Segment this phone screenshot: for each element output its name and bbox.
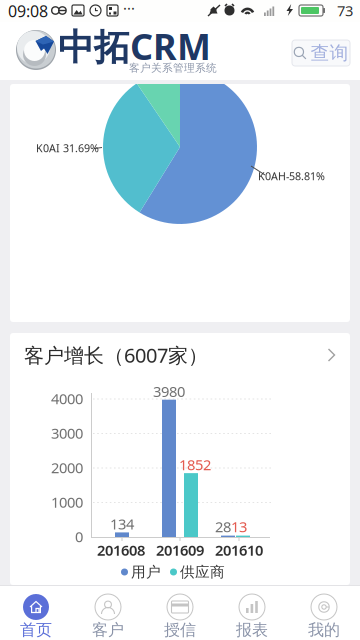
staticText: 客户关系管理系统 [129,61,217,74]
staticText: 13 [231,517,247,536]
staticText: 首页 [20,620,52,640]
staticText: 查询 [310,41,348,64]
staticText: 28 [215,517,231,536]
button[interactable]: 首页 [0,586,72,640]
staticText: 201610 [215,540,263,560]
staticText: 我的 [308,620,340,640]
staticText: 供应商 [180,563,225,581]
staticText: ··· [123,0,135,18]
staticText: 2000 [51,458,83,477]
staticText: 用户 [131,563,161,581]
button[interactable]: 授信 [144,586,216,640]
staticText: 134 [110,514,134,534]
button[interactable]: 客户增长（6007家） [10,333,350,377]
staticText: 201608 [97,540,145,560]
button[interactable]: 客户 [72,586,144,640]
staticText: 3000 [51,423,83,443]
staticText: 4000 [51,389,83,408]
staticText: 09:08 [8,0,48,22]
staticText: 客户 [92,620,124,640]
staticText: 201609 [156,540,204,560]
staticText: K0AH-58.81% [258,169,325,183]
staticText: 73 [337,1,353,20]
staticText: 授信 [164,620,196,640]
staticText: 3980 [153,381,185,401]
staticText: 1000 [51,492,83,512]
staticText: 0 [75,527,83,546]
button[interactable]: 我的 [288,586,360,640]
staticText: 中拓CRM [58,22,211,70]
staticText: 客户增长（6007家） [24,342,208,368]
staticText: K0AI 31.69% [36,141,99,155]
staticText: 1852 [179,455,211,474]
button[interactable]: 查询 [292,40,350,66]
button[interactable]: 报表 [216,586,288,640]
staticText: 报表 [236,620,268,640]
